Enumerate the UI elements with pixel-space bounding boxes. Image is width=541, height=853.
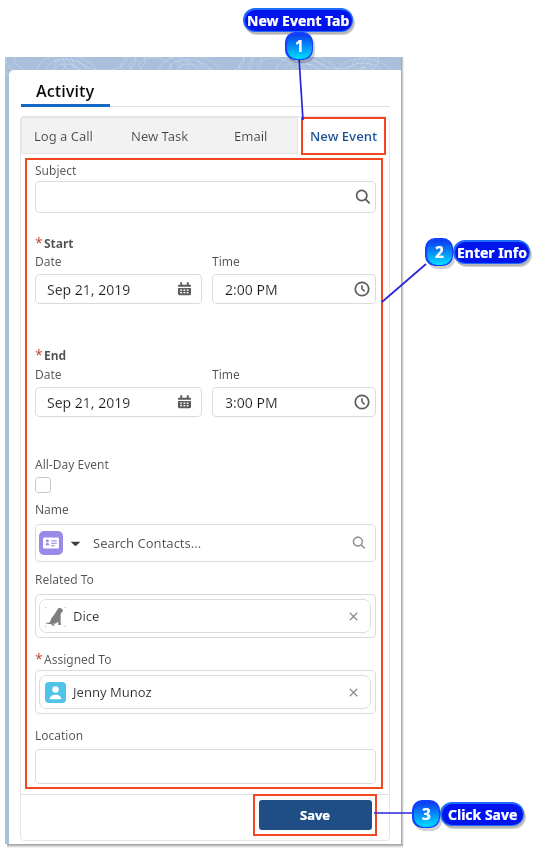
button[interactable]: Click Save (442, 804, 523, 825)
button[interactable]: New Task (117, 117, 203, 154)
button[interactable]: End date (35, 387, 202, 417)
staticText: Assigned To (44, 651, 112, 667)
staticText: Enter Info (457, 243, 527, 262)
button[interactable]: 3 (414, 802, 439, 827)
staticText: 1 (295, 36, 304, 57)
button[interactable]: Start date (35, 274, 202, 304)
button[interactable]: Log a Call (21, 117, 105, 154)
staticText: Time (212, 253, 240, 269)
button[interactable]: Enter Info (455, 242, 529, 263)
staticText: Name (35, 501, 69, 517)
staticText: * (35, 345, 43, 364)
button[interactable]: New Event Tab (245, 10, 352, 31)
staticText: * (35, 649, 43, 668)
staticText: New Task (131, 127, 189, 145)
staticText: Email (234, 127, 268, 145)
staticText: Sep 21, 2019 (47, 280, 131, 299)
staticText: 3:00 PM (225, 393, 278, 412)
staticText: Subject (35, 162, 77, 178)
staticText: 2:00 PM (225, 280, 278, 299)
staticText: End (44, 347, 67, 363)
button[interactable]: 1 (287, 34, 312, 59)
button[interactable]: Start time (212, 274, 376, 304)
staticText: Date (35, 366, 62, 382)
staticText: Activity (36, 80, 95, 102)
staticText: Date (35, 253, 62, 269)
staticText: All-Day Event (35, 456, 109, 472)
staticText: Time (212, 366, 240, 382)
button[interactable]: Subject (35, 181, 376, 213)
staticText: Jenny Munoz (73, 683, 152, 701)
staticText: * (35, 233, 43, 252)
button[interactable]: Email (213, 117, 289, 154)
button[interactable]: Search Contacts (35, 524, 376, 562)
staticText: 2 (435, 242, 444, 263)
button[interactable]: 2 (427, 240, 452, 265)
staticText: Save (300, 806, 331, 824)
staticText: Log a Call (34, 127, 93, 145)
button[interactable]: New Event (301, 117, 386, 155)
button[interactable]: Assigned To Jenny Munoz (35, 670, 376, 714)
button[interactable]: Save (259, 800, 372, 830)
staticText: Start (44, 235, 74, 251)
button[interactable]: All-Day Event checkbox (35, 477, 51, 493)
button[interactable]: Related To Dice (35, 594, 376, 638)
staticText: Click Save (448, 805, 518, 824)
staticText: Dice (73, 607, 100, 625)
staticText: New Event (310, 127, 378, 145)
staticText: New Event Tab (247, 11, 350, 30)
staticText: Sep 21, 2019 (47, 393, 131, 412)
staticText: 3 (422, 804, 431, 825)
staticText: Related To (35, 571, 94, 587)
staticText: Search Contacts... (93, 534, 202, 552)
staticText: Location (35, 727, 84, 743)
button[interactable]: End time (212, 387, 376, 417)
button[interactable]: Location (35, 749, 376, 784)
